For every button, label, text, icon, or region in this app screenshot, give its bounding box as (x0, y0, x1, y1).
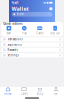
staticText: Scan (6, 31, 11, 35)
staticText: Home (4, 92, 12, 95)
staticText: Search (16, 12, 24, 16)
button[interactable]: Transactions (1, 37, 63, 41)
staticText: Me (54, 92, 58, 95)
staticText: 9:41 (11, 0, 18, 5)
button[interactable]: Scan (1, 26, 17, 35)
button[interactable]: Settings (1, 53, 63, 57)
staticText: Pay (22, 31, 26, 35)
staticText: Shop (36, 92, 43, 95)
button[interactable]: Me (48, 87, 64, 95)
button[interactable]: Pay (17, 26, 32, 35)
staticText: Cards (36, 31, 43, 35)
button[interactable]: Rewards (1, 48, 63, 52)
button[interactable]: Cards (16, 87, 32, 95)
button[interactable]: Statements (1, 42, 63, 47)
staticText: Top up (50, 31, 60, 35)
staticText: Statements (7, 43, 21, 46)
staticText: Rewards (7, 48, 17, 52)
staticText: Transactions (7, 37, 22, 41)
staticText: Settings (7, 53, 18, 57)
button[interactable]: Shop (32, 87, 48, 95)
button[interactable]: Cards (32, 26, 47, 35)
staticText: Cards (20, 92, 27, 95)
staticText: Wallet (11, 5, 28, 12)
button[interactable]: Home (0, 87, 16, 95)
button[interactable]: Top up (47, 26, 63, 35)
staticText: Quick actions (3, 22, 22, 25)
